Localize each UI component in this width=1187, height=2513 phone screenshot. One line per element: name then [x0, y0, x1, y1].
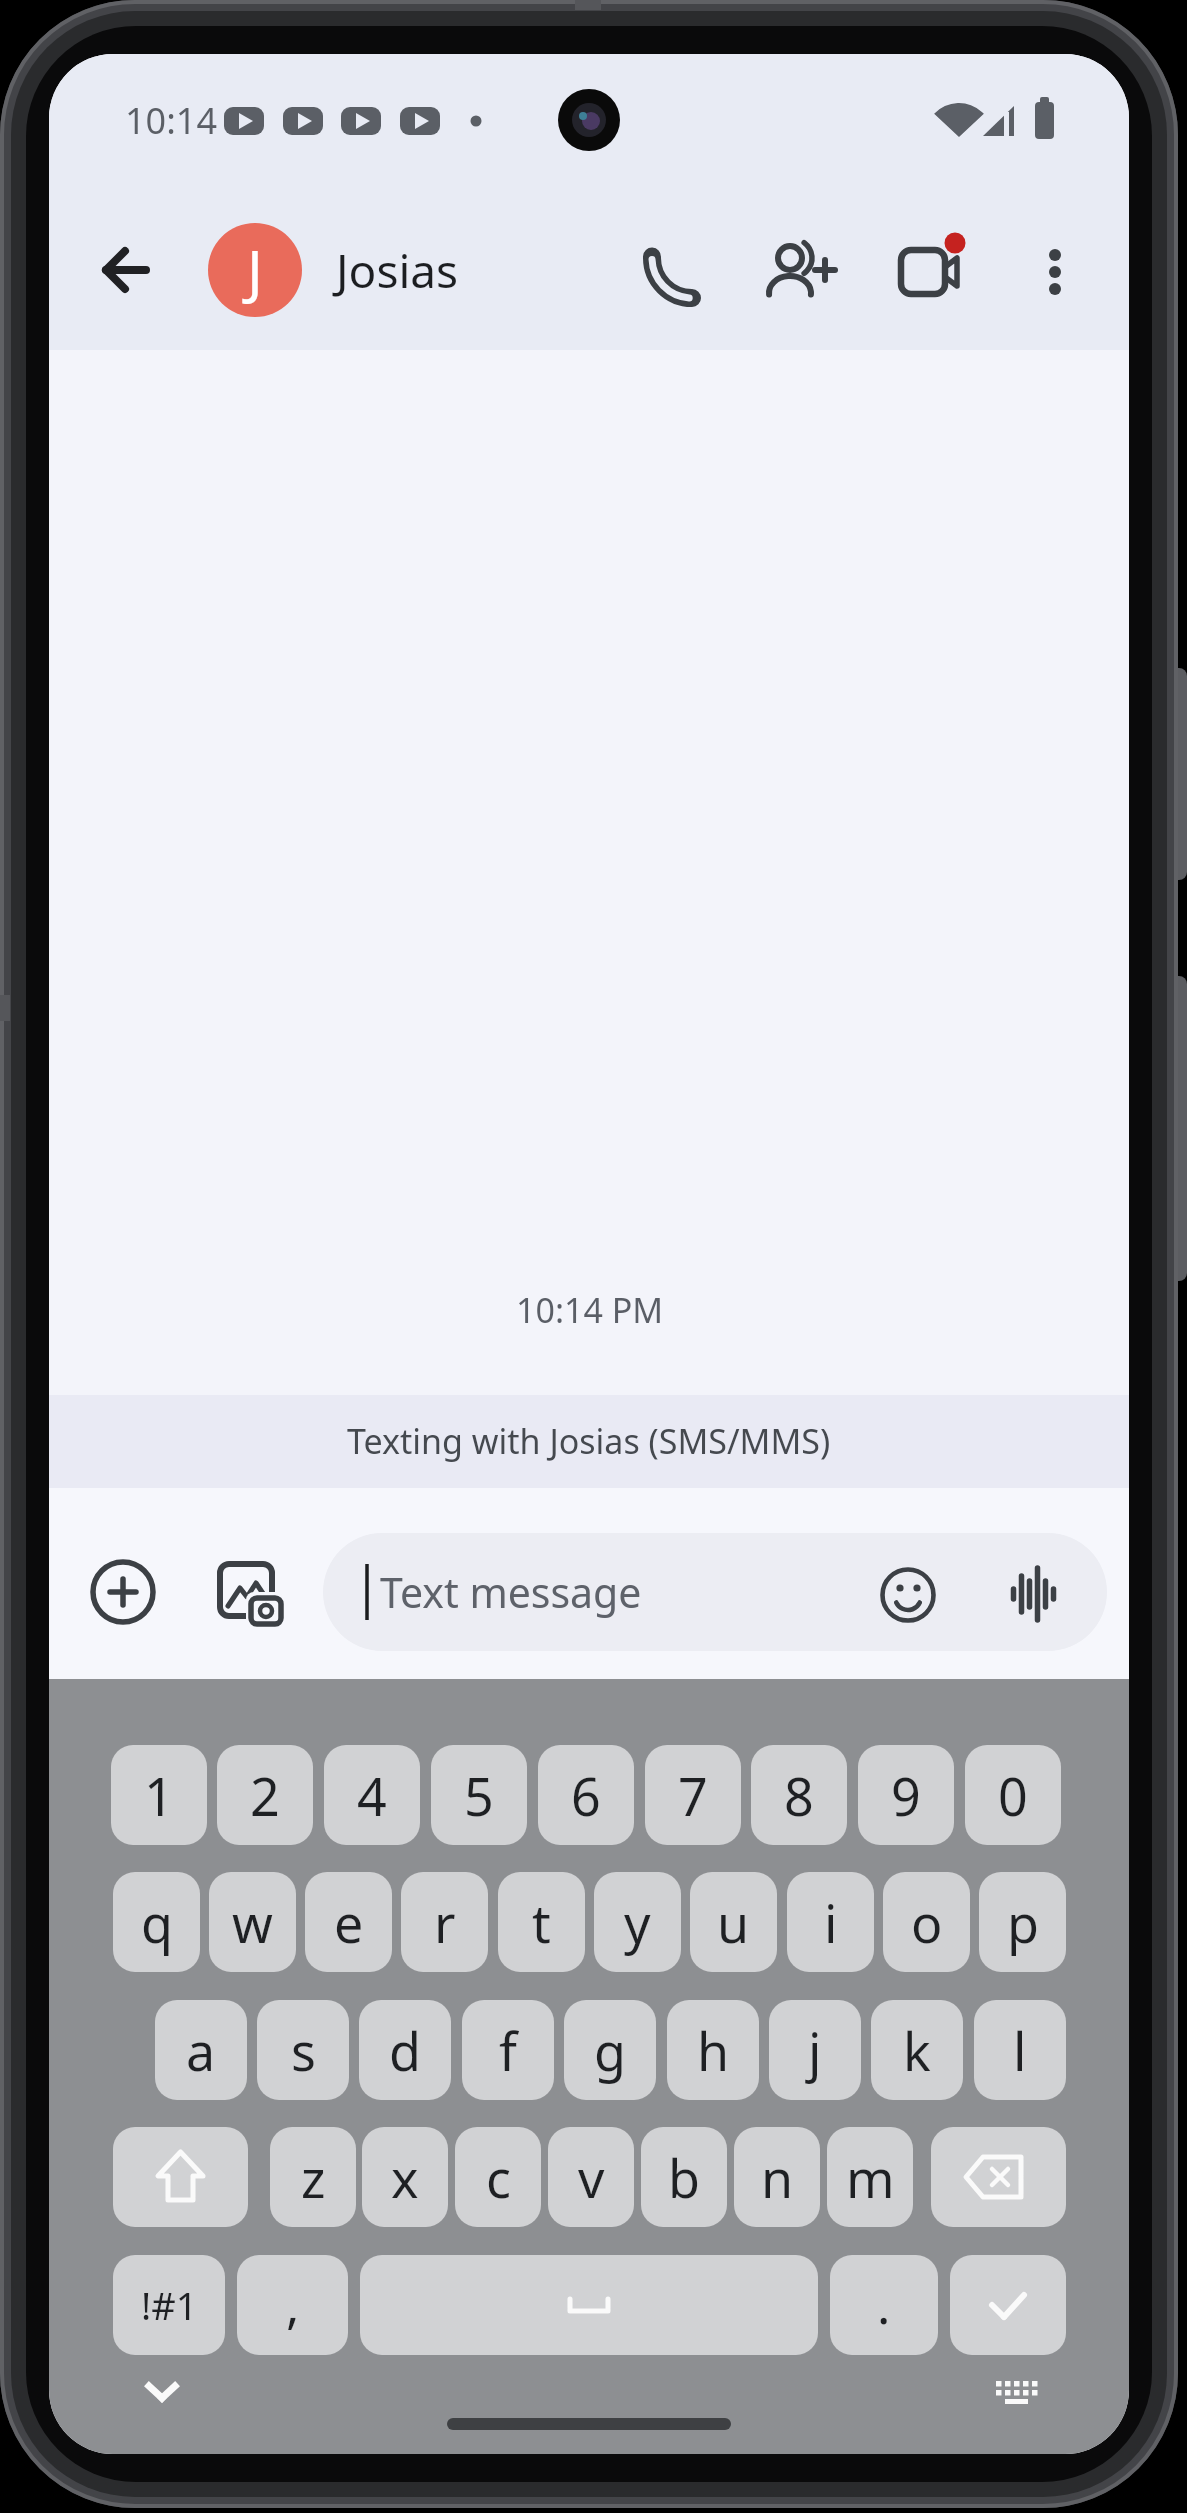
staticText: l: [1013, 2015, 1027, 2086]
button[interactable]: .: [830, 2255, 938, 2355]
button[interactable]: [447, 2408, 731, 2440]
staticText: b: [668, 2142, 700, 2213]
button[interactable]: 5: [431, 1745, 527, 1845]
button[interactable]: [996, 1552, 1076, 1632]
button[interactable]: z: [270, 2127, 356, 2227]
button[interactable]: u: [690, 1872, 777, 1972]
button[interactable]: c: [455, 2127, 541, 2227]
button[interactable]: [113, 2127, 248, 2227]
button[interactable]: s: [257, 2000, 349, 2100]
button[interactable]: v: [548, 2127, 634, 2227]
button[interactable]: y: [594, 1872, 681, 1972]
staticText: i: [824, 1887, 838, 1958]
staticText: a: [186, 2015, 216, 2086]
button[interactable]: g: [564, 2000, 656, 2100]
button[interactable]: i: [787, 1872, 874, 1972]
button[interactable]: [888, 232, 968, 312]
staticText: 7: [678, 1760, 708, 1831]
staticText: o: [911, 1887, 943, 1958]
staticText: 10:14: [125, 96, 218, 145]
staticText: J: [247, 231, 263, 310]
button[interactable]: h: [667, 2000, 759, 2100]
button[interactable]: w: [209, 1872, 296, 1972]
button[interactable]: [870, 1552, 950, 1632]
button[interactable]: x: [362, 2127, 448, 2227]
button[interactable]: d: [359, 2000, 451, 2100]
button[interactable]: [1015, 232, 1095, 312]
button[interactable]: [638, 232, 718, 312]
staticText: 4: [357, 1760, 387, 1831]
button[interactable]: o: [883, 1872, 970, 1972]
staticText: ,: [286, 2271, 300, 2339]
staticText: r: [434, 1887, 456, 1958]
staticText: 2: [250, 1760, 280, 1831]
button[interactable]: t: [498, 1872, 585, 1972]
staticText: q: [141, 1887, 173, 1958]
button[interactable]: 1: [111, 1745, 207, 1845]
button[interactable]: [360, 2255, 818, 2355]
staticText: f: [499, 2015, 517, 2086]
button[interactable]: 4: [324, 1745, 420, 1845]
button[interactable]: 2: [217, 1745, 313, 1845]
staticText: Text message: [380, 1564, 642, 1620]
staticText: t: [532, 1887, 551, 1958]
button[interactable]: ,: [237, 2255, 348, 2355]
staticText: j: [808, 2015, 822, 2086]
button[interactable]: l: [974, 2000, 1066, 2100]
button[interactable]: 9: [858, 1745, 954, 1845]
button[interactable]: [323, 1533, 1107, 1651]
staticText: s: [291, 2015, 316, 2086]
button[interactable]: p: [979, 1872, 1066, 1972]
staticText: p: [1007, 1887, 1039, 1958]
button[interactable]: q: [113, 1872, 200, 1972]
staticText: 10:14 PM: [516, 1287, 664, 1333]
button[interactable]: [760, 232, 840, 312]
button[interactable]: f: [462, 2000, 554, 2100]
staticText: .: [877, 2271, 891, 2339]
staticText: m: [846, 2142, 895, 2213]
button[interactable]: [210, 1552, 290, 1632]
button[interactable]: [977, 2350, 1057, 2430]
button[interactable]: [83, 1552, 163, 1632]
staticText: c: [486, 2142, 511, 2213]
button[interactable]: [122, 2352, 202, 2432]
staticText: !#1: [141, 2279, 198, 2331]
button[interactable]: 8: [751, 1745, 847, 1845]
button[interactable]: 7: [645, 1745, 741, 1845]
staticText: x: [391, 2142, 419, 2213]
staticText: 9: [891, 1760, 921, 1831]
staticText: e: [334, 1887, 364, 1958]
button[interactable]: k: [871, 2000, 963, 2100]
staticText: Josias: [336, 239, 459, 302]
button[interactable]: [931, 2127, 1066, 2227]
staticText: u: [717, 1887, 750, 1958]
staticText: k: [903, 2015, 931, 2086]
staticText: w: [232, 1887, 273, 1958]
staticText: z: [301, 2142, 326, 2213]
button[interactable]: m: [827, 2127, 913, 2227]
button[interactable]: j: [769, 2000, 861, 2100]
button[interactable]: !#1: [113, 2255, 225, 2355]
staticText: 0: [998, 1760, 1028, 1831]
button[interactable]: n: [734, 2127, 820, 2227]
button[interactable]: r: [401, 1872, 488, 1972]
button[interactable]: 6: [538, 1745, 634, 1845]
staticText: 1: [144, 1760, 174, 1831]
button[interactable]: [950, 2255, 1066, 2355]
staticText: y: [624, 1887, 651, 1958]
staticText: n: [761, 2142, 794, 2213]
staticText: v: [578, 2142, 605, 2213]
staticText: d: [389, 2015, 421, 2086]
staticText: g: [594, 2015, 626, 2086]
button[interactable]: e: [305, 1872, 392, 1972]
staticText: 6: [571, 1760, 601, 1831]
staticText: 8: [784, 1760, 814, 1831]
button[interactable]: [85, 230, 165, 310]
staticText: Texting with Josias (SMS/MMS): [347, 1418, 831, 1464]
button[interactable]: J: [208, 223, 302, 317]
button[interactable]: b: [641, 2127, 727, 2227]
staticText: h: [697, 2015, 730, 2086]
staticText: 5: [464, 1760, 494, 1831]
button[interactable]: 0: [965, 1745, 1061, 1845]
button[interactable]: a: [155, 2000, 247, 2100]
